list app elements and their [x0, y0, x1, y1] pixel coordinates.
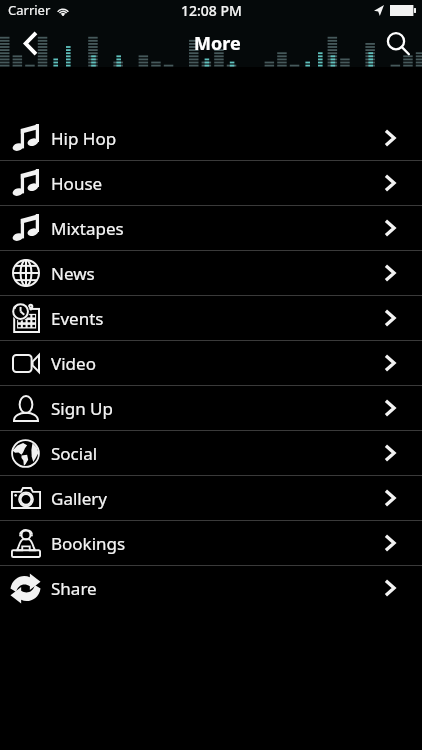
button[interactable]: Back	[0, 20, 61, 67]
staticText: Sign Up	[51, 397, 113, 420]
staticText: Social	[51, 442, 98, 465]
staticText: Mixtapes	[51, 217, 124, 240]
staticText: News	[51, 262, 95, 285]
staticText: Share	[51, 577, 97, 600]
staticText: Bookings	[51, 532, 126, 555]
button[interactable]: Share	[0, 566, 422, 610]
staticText: Video	[51, 352, 96, 375]
staticText: Hip Hop	[51, 127, 117, 150]
button[interactable]: Events	[0, 296, 422, 340]
button[interactable]: Hip Hop	[0, 116, 422, 160]
staticText: More	[194, 31, 241, 56]
staticText: Events	[51, 307, 104, 330]
staticText: Gallery	[51, 487, 107, 510]
staticText: House	[51, 172, 103, 195]
staticText: Carrier	[8, 1, 51, 19]
button[interactable]: Social	[0, 431, 422, 475]
button[interactable]: Sign Up	[0, 386, 422, 430]
button[interactable]: News	[0, 251, 422, 295]
button[interactable]: Search	[374, 20, 422, 67]
button[interactable]: Bookings	[0, 521, 422, 565]
button[interactable]: Video	[0, 341, 422, 385]
staticText: 12:08 PM	[181, 1, 242, 20]
button[interactable]: Mixtapes	[0, 206, 422, 250]
button[interactable]: House	[0, 161, 422, 205]
button[interactable]: Gallery	[0, 476, 422, 520]
